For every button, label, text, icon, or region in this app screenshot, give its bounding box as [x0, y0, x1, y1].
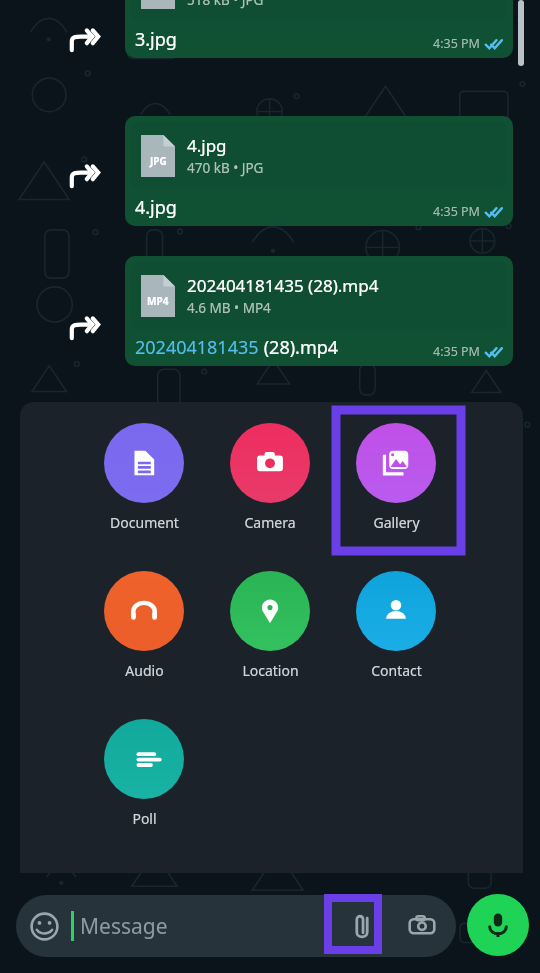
staticText: 4.jpg [135, 195, 177, 220]
staticText: MP4 [147, 294, 169, 308]
staticText: Message [80, 912, 168, 941]
staticText: 202404181435 [135, 335, 259, 360]
button[interactable]: Voice message [467, 894, 529, 956]
button[interactable]: Message [16, 895, 456, 957]
staticText: Camera [244, 513, 296, 532]
staticText: 4.6 MB • MP4 [187, 299, 271, 317]
button[interactable]: Audio [97, 571, 191, 680]
staticText: 4:35 PM [433, 343, 480, 360]
button[interactable]: Attach [340, 904, 384, 948]
staticText: (28).mp4 [259, 335, 339, 360]
button[interactable]: Location [223, 571, 317, 680]
staticText: Document [110, 513, 179, 532]
staticText: Audio [125, 661, 164, 680]
button[interactable]: Document [97, 423, 191, 532]
staticText: Contact [371, 661, 422, 680]
staticText: 518 kB • JPG [187, 0, 264, 9]
button[interactable]: JPG [125, 0, 513, 58]
staticText: 4.jpg [187, 134, 227, 157]
staticText: Poll [132, 809, 157, 828]
staticText: 202404181435 (28).mp4 [187, 274, 379, 297]
staticText: 4:35 PM [433, 203, 480, 220]
staticText: Gallery [373, 513, 420, 532]
button[interactable]: Camera [223, 423, 317, 532]
button[interactable]: Contact [349, 571, 443, 680]
staticText: JPG [150, 154, 167, 168]
staticText: 3.jpg [135, 27, 177, 52]
button[interactable]: MP4 [125, 256, 513, 366]
button[interactable]: JPG [125, 116, 513, 226]
button[interactable]: Poll [97, 719, 191, 828]
button[interactable]: Gallery [349, 423, 443, 532]
staticText: 470 kB • JPG [187, 159, 264, 177]
button[interactable]: Camera [402, 906, 442, 946]
staticText: Location [242, 661, 299, 680]
staticText: 4:35 PM [433, 35, 480, 52]
